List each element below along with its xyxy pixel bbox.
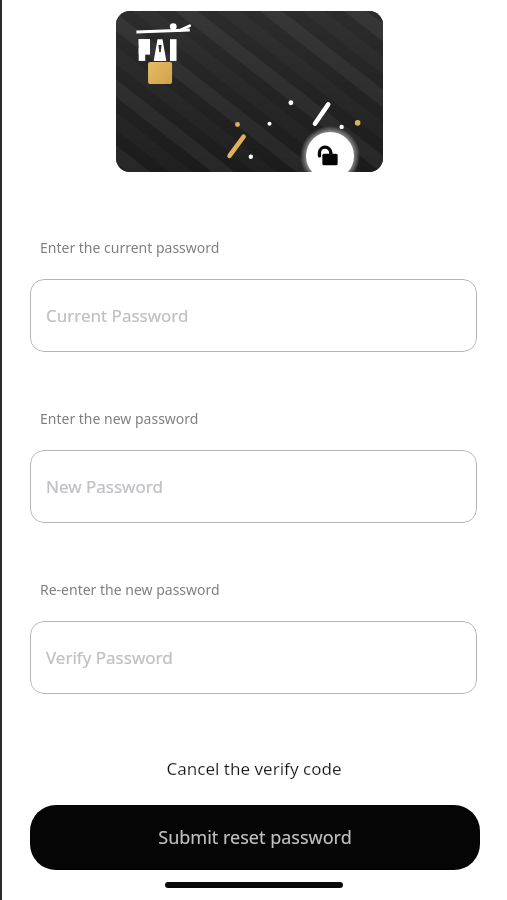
staticText: Submit reset password bbox=[158, 825, 352, 850]
staticText: New Password bbox=[46, 475, 163, 498]
button[interactable]: Current Password bbox=[30, 279, 477, 352]
button[interactable]: Verify Password bbox=[30, 621, 477, 694]
staticText: Cancel the verify code bbox=[166, 757, 342, 780]
other: Unlocked bbox=[300, 126, 360, 186]
staticText: Enter the new password bbox=[40, 409, 199, 428]
button[interactable]: Cancel the verify code bbox=[0, 757, 507, 780]
staticText: Enter the current password bbox=[40, 238, 220, 257]
staticText: Re-enter the new password bbox=[40, 580, 220, 599]
button[interactable]: Submit reset password bbox=[30, 805, 480, 870]
button[interactable]: New Password bbox=[30, 450, 477, 523]
staticText: Verify Password bbox=[46, 646, 173, 669]
staticText: Current Password bbox=[46, 304, 189, 327]
